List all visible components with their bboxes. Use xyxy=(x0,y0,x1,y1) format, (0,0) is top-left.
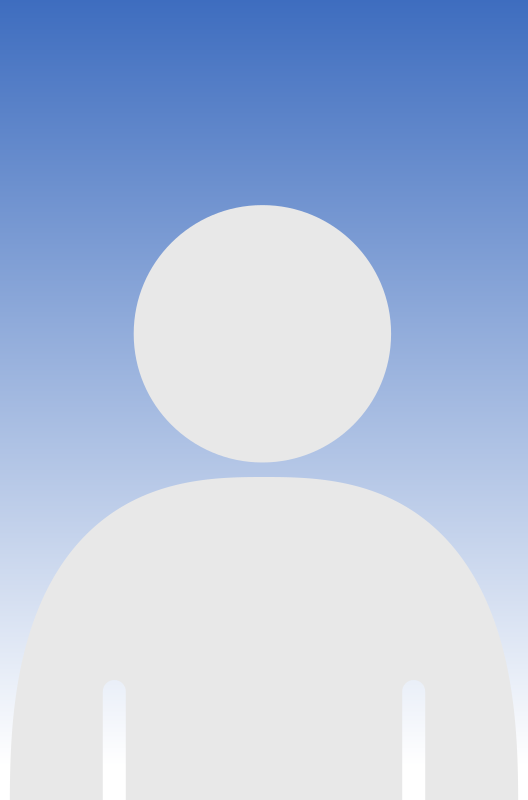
button[interactable]: Profile photo xyxy=(0,0,528,800)
